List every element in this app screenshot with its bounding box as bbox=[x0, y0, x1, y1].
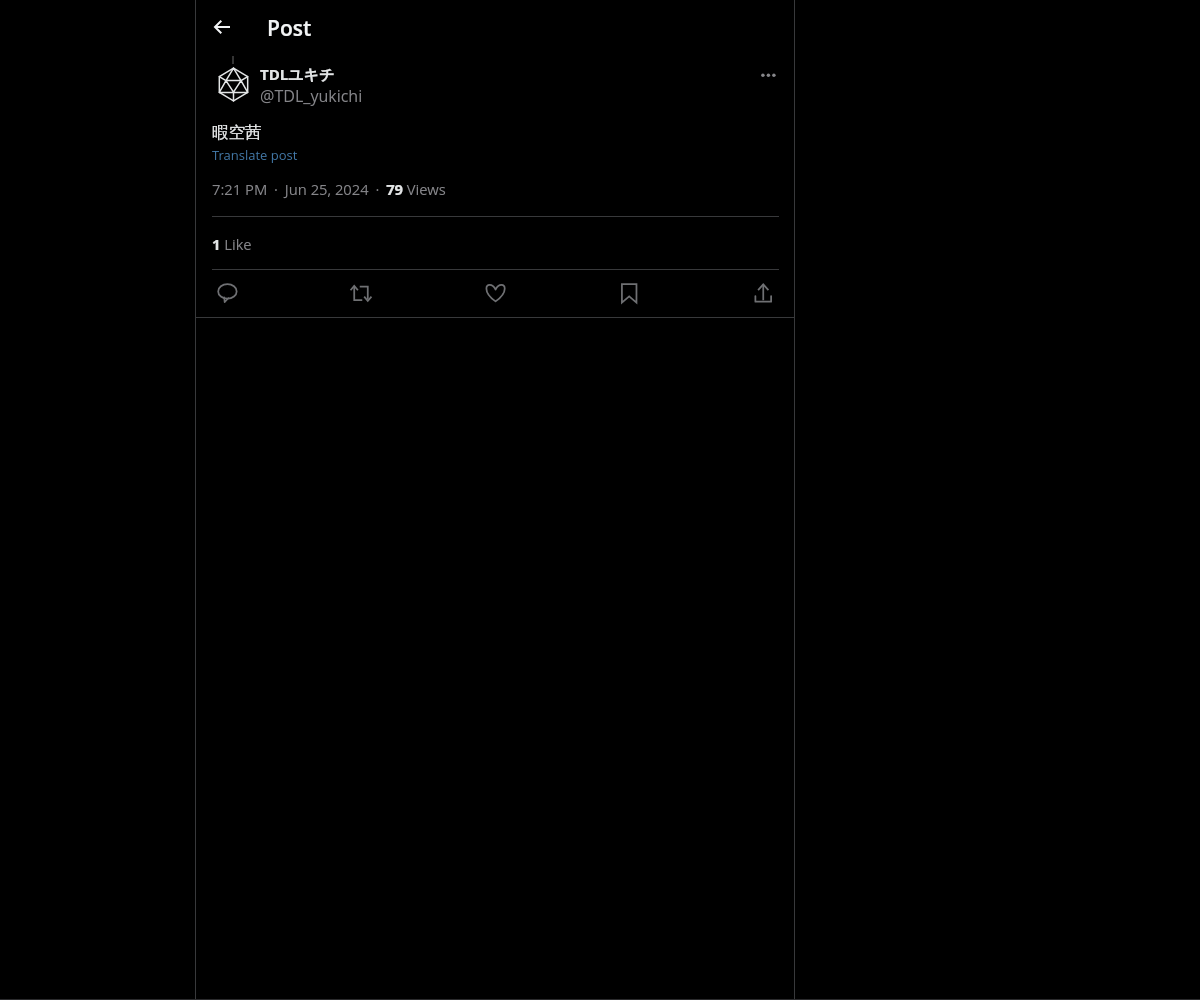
staticText: @TDL_yukichi bbox=[260, 85, 363, 107]
staticText: Translate post bbox=[212, 146, 298, 164]
staticText: Post bbox=[267, 14, 312, 43]
button[interactable]: 1 Like bbox=[212, 234, 252, 254]
button[interactable]: Translate post bbox=[212, 146, 298, 164]
button[interactable]: Back bbox=[198, 10, 232, 44]
button[interactable]: Reply bbox=[213, 279, 241, 307]
button[interactable]: More options bbox=[751, 58, 785, 92]
staticText: 1 Like bbox=[212, 234, 252, 254]
staticText: 暇空茜 bbox=[212, 122, 262, 143]
button[interactable]: Like bbox=[481, 279, 509, 307]
button[interactable]: Bookmark bbox=[615, 279, 643, 307]
button[interactable]: Share bbox=[749, 279, 777, 307]
button[interactable]: Repost bbox=[347, 279, 375, 307]
staticText: 7:21 PM · Jun 25, 2024 · 79 Views bbox=[212, 179, 446, 199]
staticText: TDLユキチ bbox=[260, 64, 335, 84]
